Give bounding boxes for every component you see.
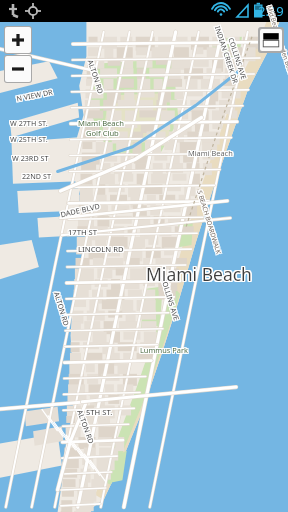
staticText: LINCOLN RD — [78, 243, 124, 253]
staticText: ALTON RD — [87, 59, 107, 96]
staticText: Miami Beach — [77, 117, 123, 127]
staticText: Mid Beach Wooden Boardwalk — [265, 4, 288, 91]
staticText: Miami Beach — [189, 148, 234, 158]
staticText: N VIEW DR — [15, 88, 53, 105]
staticText: Mid Beach Wooden Boardwalk — [265, 6, 288, 93]
staticText: ALTON RD — [51, 292, 71, 329]
staticText: Miami Beach — [77, 119, 123, 129]
staticText: W 25TH ST. — [9, 133, 47, 143]
staticText: ALTON RD — [53, 290, 73, 327]
staticText: Miami Beach — [79, 119, 125, 129]
staticText: 5TH ST. — [87, 408, 114, 418]
staticText: W 25TH ST. — [9, 134, 47, 144]
staticText: W 27TH ST. — [10, 117, 48, 127]
staticText: 22ND ST — [22, 170, 51, 180]
staticText: S BEACH BOARDWALK — [195, 189, 224, 256]
staticText: Lummus Park — [140, 346, 188, 356]
button[interactable]: Zoom in — [5, 27, 31, 53]
staticText: 22ND ST — [23, 172, 52, 182]
staticText: Miami Beach — [147, 261, 253, 285]
staticText: 22ND ST — [21, 171, 50, 181]
staticText: COLLINS AVE — [158, 276, 181, 322]
staticText: INDIAN CREEK DR — [211, 24, 239, 84]
staticText: INDIAN CREEK DR — [212, 25, 240, 85]
staticText: LINCOLN RD — [79, 245, 125, 255]
staticText: COLLINS AVE — [158, 277, 181, 323]
staticText: ALTON RD — [76, 407, 97, 444]
staticText: COLLINS AVE — [160, 275, 182, 321]
staticText: INDIAN CREEK DR — [213, 24, 241, 84]
staticText: Lummus Park — [140, 344, 188, 354]
staticText: 17TH ST — [68, 226, 98, 236]
staticText: Mid Beach Wooden Boardwalk — [266, 4, 288, 91]
staticText: COLLINS AVE — [227, 37, 250, 82]
staticText: Miami Beach — [188, 147, 233, 157]
staticText: 22ND ST — [21, 170, 50, 180]
staticText: ALTON RD — [74, 410, 96, 447]
staticText: Miami Beach — [78, 118, 124, 128]
staticText: 17TH ST — [67, 227, 97, 237]
staticText: Miami Beach — [145, 263, 251, 287]
staticText: COLLINS AVE — [224, 37, 248, 82]
staticText: DADE BLVD — [61, 201, 103, 220]
staticText: INDIAN CREEK DR — [213, 25, 241, 85]
staticText: LINCOLN RD — [79, 243, 125, 253]
staticText: 17TH ST — [67, 228, 97, 238]
button[interactable]: Map type — [260, 29, 282, 51]
staticText: Miami Beach — [188, 148, 233, 158]
staticText: N VIEW DR — [15, 86, 53, 102]
staticText: Mid Beach Wooden Boardwalk — [267, 3, 288, 90]
staticText: Mid Beach Wooden Boardwalk — [267, 4, 288, 91]
staticText: Miami Beach — [79, 118, 125, 128]
staticText: W 27TH ST. — [10, 119, 48, 129]
staticText: Lummus Park — [141, 345, 189, 355]
staticText: N VIEW DR — [16, 85, 54, 102]
staticText: S BEACH BOARDWALK — [195, 188, 223, 255]
staticText: ALTON RD — [74, 408, 96, 445]
button[interactable]: Zoom out — [5, 56, 31, 82]
staticText: Mid Beach Wooden Boardwalk — [266, 3, 288, 91]
staticText: Lummus Park — [141, 344, 189, 354]
staticText: W 25TH ST. — [10, 134, 48, 144]
staticText: S BEACH BOARDWALK — [196, 190, 224, 257]
staticText: 17TH ST — [69, 228, 99, 238]
staticText: Lummus Park — [139, 346, 187, 356]
staticText: W 25TH ST. — [11, 134, 49, 144]
staticText: Miami Beach — [187, 149, 232, 159]
staticText: INDIAN CREEK DR — [213, 26, 241, 86]
staticText: ALTON RD — [76, 408, 98, 445]
staticText: N VIEW DR — [16, 86, 55, 103]
staticText: W 27TH ST. — [9, 118, 47, 128]
staticText: S BEACH BOARDWALK — [196, 189, 225, 256]
staticText: N VIEW DR — [15, 87, 54, 103]
staticText: COLLINS AVE — [158, 275, 181, 321]
staticText: Lummus Park — [139, 345, 187, 355]
staticText: S BEACH BOARDWALK — [197, 190, 225, 256]
staticText: LINCOLN RD — [78, 245, 124, 255]
staticText: S BEACH BOARDWALK — [195, 190, 223, 257]
staticText: ALTON RD — [86, 57, 107, 94]
staticText: W 23RD ST — [12, 154, 49, 164]
staticText: Golf Club — [85, 128, 118, 138]
staticText: ALTON RD — [75, 409, 97, 446]
staticText: Golf Club — [85, 127, 118, 137]
staticText: W 23RD ST — [11, 153, 48, 163]
staticText: Golf Club — [87, 128, 120, 138]
staticText: W 25TH ST. — [10, 133, 48, 143]
staticText: N VIEW DR — [14, 86, 52, 103]
staticText: 22ND ST — [23, 171, 52, 181]
staticText: ALTON RD — [53, 291, 73, 328]
staticText: W 23RD ST — [13, 154, 50, 164]
staticText: COLLINS AVE — [224, 36, 247, 81]
staticText: W 23RD ST — [12, 153, 49, 163]
staticText: W 23RD ST — [12, 152, 49, 162]
staticText: Miami Beach — [188, 149, 233, 159]
staticText: 22ND ST — [21, 172, 50, 182]
staticText: Miami Beach — [187, 148, 232, 158]
staticText: COLLINS AVE — [159, 276, 182, 322]
staticText: W 27TH ST. — [9, 119, 47, 129]
staticText: COLLINS AVE — [160, 277, 183, 323]
staticText: COLLINS AVE — [160, 276, 183, 322]
staticText: W 25TH ST. — [9, 135, 47, 145]
staticText: 5TH ST. — [87, 407, 114, 417]
